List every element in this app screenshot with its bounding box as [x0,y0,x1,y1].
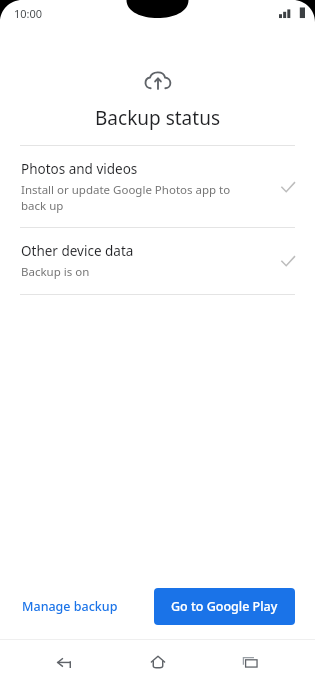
staticText: 10:00 [14,6,43,21]
staticText: Manage backup [22,598,118,615]
button[interactable]: Back [37,639,93,684]
staticText: Backup status [0,105,315,131]
staticText: Photos and videos [21,160,138,178]
staticText: Other device data [21,242,134,260]
staticText: Install or update Google Photos app to b… [21,182,231,213]
button[interactable]: Manage backup [12,589,128,624]
button[interactable]: Photos and videos [0,146,315,227]
staticText: Backup is on [21,264,90,280]
staticText: Go to Google Play [171,598,278,615]
button[interactable]: Go to Google Play [154,588,295,625]
button[interactable]: Recents [222,639,278,684]
button[interactable]: Other device data [0,228,315,294]
button[interactable]: Home [130,639,186,684]
